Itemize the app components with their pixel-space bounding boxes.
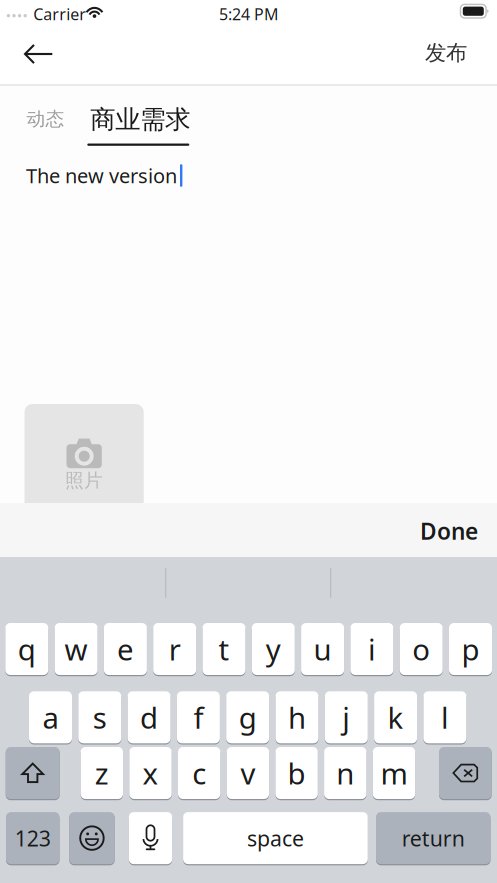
- button[interactable]: 123: [6, 811, 59, 865]
- staticText: d: [140, 698, 158, 737]
- staticText: Carrier: [33, 3, 86, 25]
- staticText: 商业需求: [90, 104, 190, 135]
- button[interactable]: Delete: [439, 746, 492, 800]
- button[interactable]: 商业需求: [84, 100, 250, 154]
- button[interactable]: a: [29, 691, 72, 744]
- staticText: v: [240, 753, 255, 792]
- button[interactable]: b: [275, 746, 318, 800]
- button[interactable]: Dictation: [129, 811, 172, 865]
- staticText: p: [461, 629, 479, 668]
- staticText: y: [266, 629, 281, 668]
- button[interactable]: Shift: [6, 746, 60, 800]
- staticText: g: [239, 698, 257, 737]
- button[interactable]: p: [449, 622, 492, 676]
- staticText: z: [95, 753, 109, 792]
- staticText: 5:24 PM: [219, 3, 279, 25]
- staticText: 照片: [65, 469, 103, 492]
- staticText: 123: [15, 824, 51, 852]
- button[interactable]: 动态: [21, 100, 69, 138]
- staticText: l: [441, 698, 449, 737]
- button[interactable]: o: [400, 622, 443, 676]
- staticText: e: [117, 629, 134, 668]
- button[interactable]: i: [350, 622, 393, 676]
- button[interactable]: w: [55, 622, 98, 676]
- staticText: u: [314, 629, 332, 668]
- staticText: o: [412, 629, 430, 668]
- button[interactable]: space: [183, 811, 368, 865]
- button[interactable]: 发布: [416, 29, 476, 77]
- button[interactable]: g: [226, 691, 269, 744]
- button[interactable]: t: [202, 622, 245, 676]
- staticText: h: [288, 698, 306, 737]
- button[interactable]: return: [376, 811, 490, 865]
- staticText: b: [288, 753, 306, 792]
- staticText: a: [42, 698, 58, 737]
- button[interactable]: e: [104, 622, 147, 676]
- button[interactable]: Done: [409, 504, 489, 558]
- button[interactable]: s: [78, 691, 121, 744]
- button[interactable]: h: [275, 691, 318, 744]
- button[interactable]: n: [324, 746, 366, 800]
- staticText: w: [65, 629, 88, 668]
- staticText: r: [169, 629, 181, 668]
- button[interactable]: q: [5, 622, 48, 676]
- button[interactable]: Add photo: [24, 404, 144, 523]
- staticText: k: [388, 698, 404, 737]
- button[interactable]: r: [153, 622, 196, 676]
- staticText: q: [18, 629, 36, 668]
- staticText: i: [368, 629, 376, 668]
- button[interactable]: v: [227, 746, 269, 800]
- staticText: t: [218, 629, 229, 668]
- staticText: j: [342, 698, 350, 737]
- staticText: n: [336, 753, 354, 792]
- button[interactable]: l: [423, 691, 466, 744]
- staticText: The new version: [26, 162, 177, 189]
- staticText: c: [192, 753, 206, 792]
- staticText: f: [193, 698, 203, 737]
- button[interactable]: Emoji: [69, 811, 115, 865]
- button[interactable]: Back: [9, 30, 67, 78]
- button[interactable]: m: [373, 746, 415, 800]
- staticText: Done: [420, 516, 478, 546]
- staticText: return: [402, 824, 465, 852]
- button[interactable]: k: [374, 691, 417, 744]
- staticText: s: [93, 698, 107, 737]
- button[interactable]: x: [129, 746, 172, 800]
- button[interactable]: c: [178, 746, 220, 800]
- button[interactable]: d: [128, 691, 171, 744]
- staticText: x: [142, 753, 158, 792]
- button[interactable]: y: [252, 622, 295, 676]
- button[interactable]: z: [81, 746, 123, 800]
- staticText: space: [247, 824, 304, 852]
- button[interactable]: u: [301, 622, 344, 676]
- staticText: 动态: [26, 107, 64, 130]
- staticText: m: [380, 753, 407, 792]
- button[interactable]: j: [325, 691, 368, 744]
- staticText: 发布: [425, 40, 467, 66]
- button[interactable]: f: [177, 691, 220, 744]
